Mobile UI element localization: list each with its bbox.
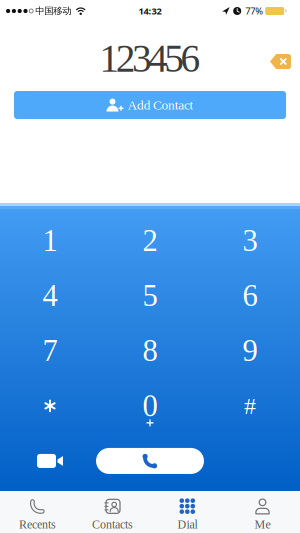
staticText: 6 [242, 279, 257, 313]
button[interactable]: 6 [200, 268, 300, 323]
button[interactable]: Dial [150, 491, 225, 533]
button[interactable]: Contacts [75, 491, 150, 533]
staticText: Dial [177, 518, 197, 531]
button[interactable]: Call [96, 448, 204, 474]
staticText: 4 [42, 279, 57, 313]
staticText: Me [254, 518, 270, 531]
staticText: 14:32 [138, 5, 161, 17]
staticText: 0 [142, 389, 157, 423]
staticText: 1 [42, 224, 57, 258]
staticText: Contacts [92, 518, 133, 531]
staticText: 3 [242, 224, 257, 258]
button[interactable]: 7 [0, 323, 100, 378]
button[interactable]: Delete [270, 54, 291, 69]
button[interactable]: # [200, 378, 300, 433]
staticText: 7 [42, 334, 57, 368]
button[interactable]: Add Contact [14, 91, 286, 119]
button[interactable]: 5 [100, 268, 200, 323]
button[interactable]: Recents [0, 491, 75, 533]
staticText: Add Contact [127, 98, 193, 112]
button[interactable]: 1 [0, 213, 100, 268]
staticText: 5 [142, 279, 157, 313]
button[interactable]: 2 [100, 213, 200, 268]
staticText: 77% [245, 5, 263, 17]
staticText: Recents [19, 518, 56, 531]
button[interactable]: 9 [200, 323, 300, 378]
staticText: 8 [142, 334, 157, 368]
button[interactable]: 0 [100, 378, 200, 433]
button[interactable]: 8 [100, 323, 200, 378]
staticText: 2 [142, 224, 157, 258]
button[interactable]: * [0, 378, 100, 433]
staticText: 中国移动 [35, 5, 71, 17]
staticText: 9 [242, 334, 257, 368]
button[interactable]: Video call [0, 433, 100, 488]
button[interactable]: Me [225, 491, 300, 533]
staticText: 123456 [99, 37, 200, 80]
staticText: # [244, 393, 256, 419]
button[interactable]: 3 [200, 213, 300, 268]
button[interactable]: 4 [0, 268, 100, 323]
